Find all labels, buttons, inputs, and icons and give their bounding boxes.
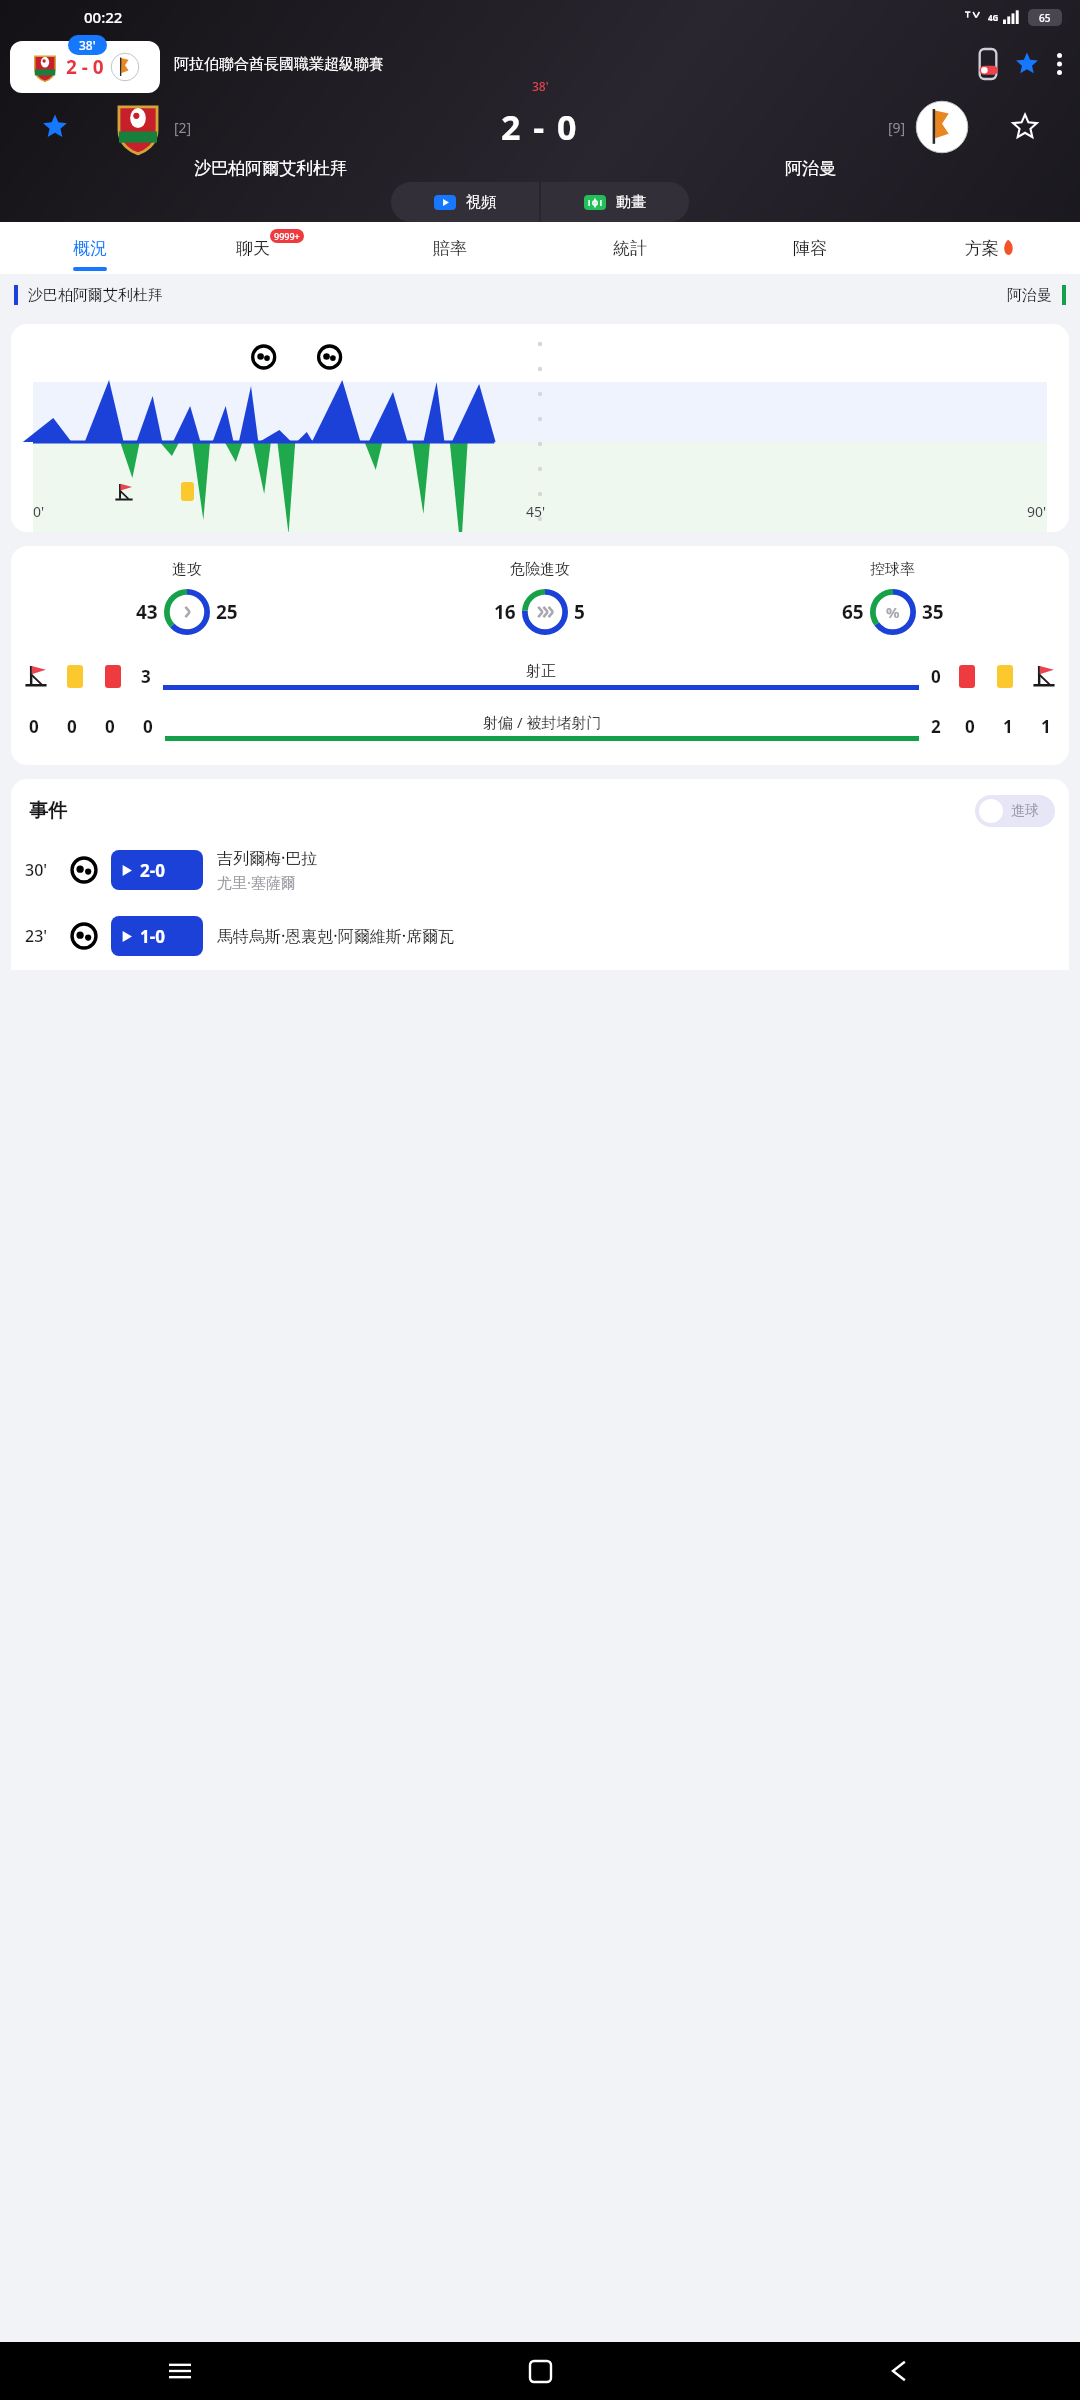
staticText: 視頻 — [466, 193, 496, 212]
staticText: 1 — [1041, 715, 1051, 738]
staticText: 35 — [922, 599, 944, 625]
button[interactable]: 進攻 — [11, 546, 1069, 765]
staticText: 45' — [526, 502, 546, 521]
staticText: 65 — [1039, 11, 1051, 25]
button[interactable]: More options — [1053, 49, 1066, 79]
button[interactable]: Back — [720, 2342, 1080, 2400]
staticText: 0 — [105, 715, 115, 738]
staticText: 0 — [965, 715, 975, 738]
button[interactable]: 控球率 — [716, 560, 1069, 635]
button[interactable]: 聊天 — [180, 222, 360, 274]
staticText: 0 — [67, 715, 77, 738]
staticText: 30' — [25, 859, 48, 881]
button[interactable]: Notification toggle — [975, 49, 1001, 79]
staticText: 進攻 — [172, 560, 202, 579]
button[interactable]: 動畫 — [541, 182, 689, 222]
staticText: 4G — [988, 12, 999, 23]
staticText: [2] — [174, 118, 192, 137]
staticText: 阿拉伯聯合酋長國職業超級聯賽 — [174, 55, 384, 74]
staticText: 0 — [931, 665, 941, 688]
staticText: 5 — [574, 599, 585, 625]
button[interactable]: 視頻 — [391, 182, 539, 222]
button[interactable]: 進球 — [975, 795, 1055, 827]
button[interactable]: 2 - 0 — [10, 41, 160, 93]
staticText: 馬特烏斯·恩裏剋·阿爾維斯·席爾瓦 — [217, 925, 455, 947]
button[interactable]: Recents — [0, 2342, 360, 2400]
button[interactable]: 賠率 — [360, 222, 540, 274]
staticText: 阿治曼 — [1007, 286, 1052, 305]
staticText: 阿治曼 — [785, 158, 836, 179]
staticText: 聊天 — [236, 238, 270, 259]
staticText: [9] — [888, 118, 906, 137]
staticText: 沙巴柏阿爾艾利杜拜 — [194, 158, 347, 179]
staticText: 統計 — [613, 238, 647, 259]
staticText: 0 — [143, 715, 153, 738]
staticText: 0' — [33, 502, 45, 521]
staticText: 1-0 — [140, 925, 165, 948]
staticText: 陣容 — [793, 238, 827, 259]
staticText: 沙巴柏阿爾艾利杜拜 — [28, 286, 163, 305]
staticText: 43 — [136, 599, 158, 625]
staticText: 射偏 / 被封堵射门 — [483, 712, 602, 732]
button[interactable]: 方案 — [900, 222, 1080, 274]
button[interactable]: Favourite home team — [42, 114, 68, 140]
staticText: 控球率 — [870, 560, 915, 579]
button[interactable]: 危險進攻 — [363, 560, 716, 635]
staticText: 0 — [29, 715, 39, 738]
staticText: 尤里·塞薩爾 — [217, 872, 297, 892]
staticText: 9999+ — [274, 230, 300, 242]
staticText: 00:22 — [84, 7, 123, 27]
staticText: 進球 — [1011, 802, 1039, 820]
staticText: 38' — [532, 78, 549, 94]
staticText: 3 — [141, 665, 151, 688]
staticText: 23' — [25, 925, 48, 947]
button[interactable]: 統計 — [540, 222, 720, 274]
button[interactable]: 0' — [11, 324, 1069, 532]
staticText: 2 - 0 — [501, 104, 579, 150]
staticText: 65 — [842, 599, 864, 625]
button[interactable]: 進攻 — [11, 560, 363, 635]
button[interactable]: 23' — [11, 910, 1069, 962]
button[interactable]: Favourite away team — [1012, 114, 1038, 140]
staticText: 危險進攻 — [510, 560, 570, 579]
button[interactable]: 概況 — [0, 222, 180, 274]
staticText: 賠率 — [433, 238, 467, 259]
staticText: 38' — [79, 37, 96, 53]
staticText: 事件 — [29, 799, 67, 823]
staticText: 1 — [1003, 715, 1013, 738]
staticText: 25 — [216, 599, 238, 625]
staticText: 動畫 — [616, 193, 646, 212]
staticText: 吉列爾梅·巴拉 — [217, 847, 318, 869]
button[interactable]: Home — [360, 2342, 720, 2400]
staticText: 方案 — [965, 238, 999, 259]
button[interactable]: 30' — [11, 841, 1069, 898]
staticText: 射正 — [526, 662, 556, 681]
staticText: 90' — [1027, 502, 1047, 521]
staticText: 2 — [931, 715, 941, 738]
staticText: % — [886, 602, 900, 622]
staticText: 2-0 — [140, 859, 165, 882]
staticText: 2 - 0 — [66, 54, 104, 80]
staticText: 16 — [494, 599, 516, 625]
button[interactable]: 陣容 — [720, 222, 900, 274]
staticText: 概況 — [73, 238, 107, 259]
